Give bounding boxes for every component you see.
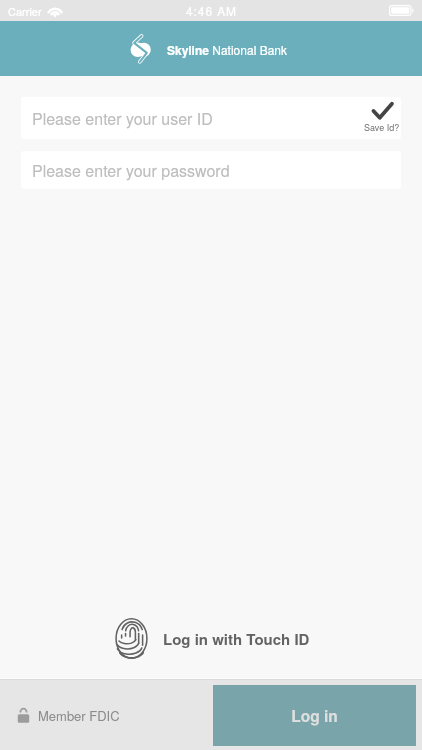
staticText: National Bank [209,41,287,58]
staticText: Member FDIC [38,706,120,725]
staticText: Please enter your password [32,159,230,182]
staticText: Carrier [8,3,42,19]
staticText: 4:46 AM [186,2,237,19]
button[interactable]: Log in [213,685,416,746]
staticText: Log in [291,705,338,727]
staticText: Log in with Touch ID [163,628,310,649]
button[interactable]: Please enter your user ID [21,97,401,139]
button[interactable]: Please enter your password [21,151,401,189]
button[interactable]: Log in with Touch ID [0,606,422,678]
staticText: Please enter your user ID [32,107,213,130]
staticText: Save Id? [364,121,400,134]
staticText: Skyline [167,41,209,58]
